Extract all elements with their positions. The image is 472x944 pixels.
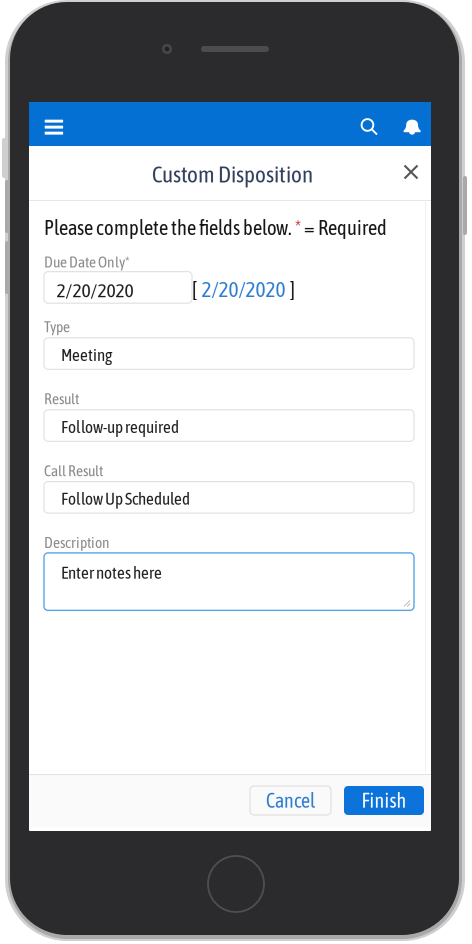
staticText: Due Date Only*: [44, 253, 130, 271]
button[interactable]: Menu: [29, 102, 73, 146]
staticText: Cancel: [266, 789, 315, 812]
staticText: ]: [290, 277, 295, 301]
staticText: 2/20/2020: [57, 279, 134, 301]
button[interactable]: Close: [390, 150, 432, 194]
staticText: Custom Disposition: [152, 161, 313, 187]
staticText: [: [192, 277, 197, 301]
staticText: Follow-up required: [61, 417, 179, 437]
button[interactable]: Notifications: [391, 102, 433, 146]
staticText: Type: [44, 318, 70, 335]
staticText: Enter notes here: [61, 563, 162, 582]
button[interactable]: Finish: [344, 786, 424, 815]
staticText: Result: [44, 390, 79, 407]
staticText: *: [295, 216, 301, 239]
staticText: Follow Up Scheduled: [61, 489, 190, 508]
button[interactable]: Cancel: [250, 786, 331, 815]
staticText: Call Result: [44, 462, 103, 480]
staticText: Meeting: [61, 345, 112, 365]
staticText: Description: [44, 533, 110, 551]
staticText: = Required: [301, 216, 387, 239]
staticText: Finish: [361, 789, 406, 812]
button[interactable]: Search: [348, 102, 390, 146]
staticText: 2/20/2020: [201, 277, 285, 301]
staticText: Please complete the fields below.: [44, 216, 295, 239]
